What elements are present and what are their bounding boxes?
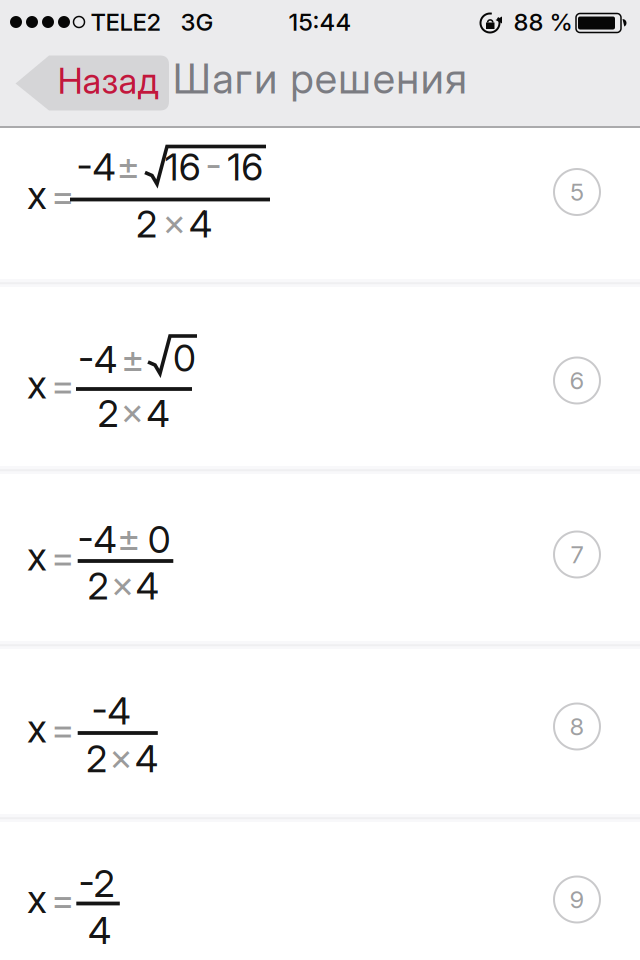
staticText: 6 [569, 366, 584, 395]
button[interactable]: x [0, 287, 640, 466]
staticText: 4 [135, 736, 158, 781]
staticText: 2 [97, 391, 118, 436]
staticText: × [111, 561, 135, 606]
staticText: -2 [78, 861, 114, 906]
staticText: 9 [569, 885, 584, 914]
staticText: 4 [146, 391, 169, 436]
staticText: 2 [86, 736, 107, 781]
button[interactable]: x [0, 128, 640, 279]
staticText: TELE2 [90, 7, 161, 36]
staticText: × [162, 200, 186, 244]
staticText: x [27, 705, 47, 752]
staticText: -4 [78, 337, 117, 382]
staticText: × [120, 389, 144, 433]
staticText: 0 [148, 517, 171, 562]
staticText: 0 [173, 336, 196, 380]
staticText: ± [116, 143, 140, 188]
staticText: 16 [165, 145, 201, 189]
staticText: 5 [570, 177, 584, 206]
staticText: = [51, 707, 75, 751]
staticText: 2 [136, 202, 157, 246]
button[interactable]: x [0, 822, 640, 960]
staticText: x [27, 172, 47, 218]
staticText: 3G [180, 7, 213, 36]
button[interactable]: x [0, 649, 640, 814]
staticText: × [109, 734, 133, 779]
staticText: x [27, 361, 47, 408]
staticText: = [51, 363, 75, 407]
staticText: -4 [76, 145, 115, 189]
staticText: ± [117, 515, 141, 560]
staticText: Назад [57, 60, 158, 102]
staticText: 2 [87, 563, 108, 608]
staticText: 4 [136, 563, 159, 608]
button[interactable]: x [0, 474, 640, 641]
staticText: -4 [77, 517, 116, 562]
staticText: -4 [91, 688, 130, 733]
staticText: x [27, 876, 47, 922]
button[interactable]: Назад [15, 55, 169, 110]
staticText: x [27, 533, 47, 580]
staticText: = [51, 173, 75, 218]
staticText: 8 [569, 712, 584, 741]
staticText: 15:44 [288, 7, 351, 36]
staticText: = [51, 877, 75, 922]
staticText: - [205, 142, 221, 187]
staticText: 4 [88, 908, 111, 953]
staticText: 7 [570, 540, 583, 569]
staticText: = [51, 535, 75, 579]
staticText: 4 [189, 202, 212, 246]
staticText: Шаги решения [173, 53, 467, 103]
staticText: 16 [227, 145, 263, 189]
staticText: 88 % [513, 7, 572, 36]
staticText: ± [121, 336, 145, 381]
